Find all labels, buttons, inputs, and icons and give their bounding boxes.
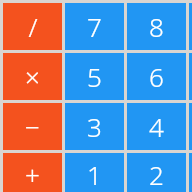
staticText: 6: [149, 59, 164, 94]
staticText: 7: [87, 9, 102, 44]
button[interactable]: 2: [127, 153, 186, 192]
button[interactable]: 5: [65, 53, 124, 100]
button[interactable]: 7: [65, 3, 124, 50]
button[interactable]: 8: [127, 3, 186, 50]
button[interactable]: 6: [127, 53, 186, 100]
button[interactable]: 1: [65, 153, 124, 192]
staticText: −: [25, 109, 40, 144]
button[interactable]: ×: [3, 53, 62, 100]
staticText: 2: [149, 157, 164, 192]
button[interactable]: −: [3, 103, 62, 150]
staticText: 3: [87, 109, 102, 144]
staticText: 4: [149, 109, 164, 144]
button[interactable]: +: [3, 153, 62, 192]
staticText: 8: [149, 9, 164, 44]
staticText: ×: [25, 59, 40, 94]
button[interactable]: /: [3, 3, 62, 50]
staticText: /: [28, 9, 38, 44]
button[interactable]: 4: [127, 103, 186, 150]
staticText: 5: [87, 59, 102, 94]
staticText: 1: [87, 157, 102, 192]
button[interactable]: 3: [65, 103, 124, 150]
staticText: +: [25, 157, 40, 192]
